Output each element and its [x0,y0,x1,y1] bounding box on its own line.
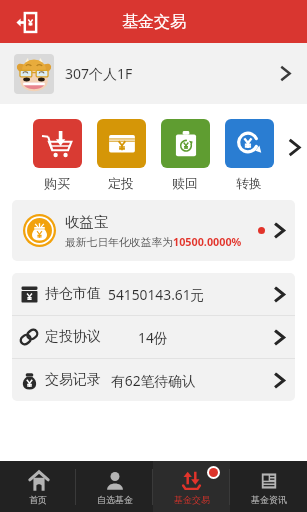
staticText: 定投协议 [45,328,101,346]
staticText: 307个人1F [65,64,133,83]
staticText: 基金交易 [174,494,210,505]
button[interactable]: 转换 [217,119,281,191]
button[interactable]: Back [10,6,42,38]
staticText: 收益宝 [65,213,109,231]
button[interactable]: 收益宝 [12,200,295,261]
staticText: 自选基金 [97,494,133,505]
staticText: 有62笔待确认 [111,371,196,390]
staticText: 首页 [29,494,47,505]
button[interactable]: More [281,109,307,200]
button[interactable]: 基金交易 [153,461,230,512]
button[interactable]: 基金资讯 [230,461,307,512]
button[interactable]: 持仓市值 [12,273,295,315]
button[interactable]: 定投协议 [12,316,295,358]
staticText: 交易记录 [45,371,101,389]
staticText: 定投 [108,175,134,191]
staticText: 转换 [236,175,262,191]
staticText: 基金交易 [122,12,186,32]
staticText: 14份 [138,328,168,347]
staticText: 54150143.61元 [108,285,205,304]
button[interactable]: 自选基金 [76,461,153,512]
staticText: 购买 [44,175,70,191]
staticText: 赎回 [172,175,198,191]
button[interactable]: 购买 [25,119,89,191]
button[interactable]: 交易记录 [12,359,295,401]
button[interactable]: 首页 [0,461,76,512]
staticText: 最新七日年化收益率为10500.0000% [65,234,242,249]
staticText: 持仓市值 [45,285,101,303]
button[interactable]: 赎回 [153,119,217,191]
staticText: 基金资讯 [251,494,287,505]
button[interactable]: 307个人1F [0,43,307,104]
button[interactable]: 定投 [89,119,153,191]
